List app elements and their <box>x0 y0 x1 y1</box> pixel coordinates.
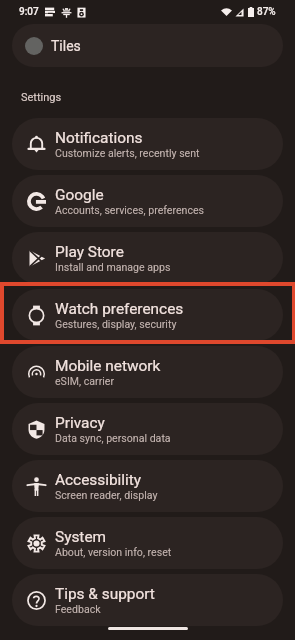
staticText: Mobile network <box>55 357 161 375</box>
staticText: Google <box>55 186 104 204</box>
button[interactable]: Notifications <box>12 118 283 170</box>
staticText: 9:07 <box>19 6 39 18</box>
button[interactable]: Mobile network <box>12 346 283 398</box>
staticText: Data sync, personal data <box>55 432 171 444</box>
button[interactable]: Tips & support <box>12 574 283 626</box>
button[interactable]: Privacy <box>12 403 283 455</box>
staticText: Settings <box>21 91 62 104</box>
button[interactable]: Google <box>12 175 283 227</box>
staticText: Notifications <box>55 129 143 147</box>
staticText: Accounts, services, preferences <box>55 204 205 216</box>
staticText: Watch preferences <box>55 300 184 318</box>
staticText: About, version info, reset <box>55 546 172 558</box>
staticText: Screen reader, display <box>55 489 158 501</box>
button[interactable]: Tiles <box>12 24 283 67</box>
staticText: System <box>55 528 107 546</box>
staticText: Gestures, display, security <box>55 318 177 330</box>
button[interactable]: System <box>12 517 283 569</box>
staticText: Tips & support <box>55 585 155 603</box>
staticText: Customize alerts, recently sent <box>55 147 200 159</box>
staticText: Tiles <box>51 38 81 54</box>
staticText: Install and manage apps <box>55 261 171 273</box>
staticText: eSIM, carrier <box>55 375 115 387</box>
staticText: Feedback <box>55 603 101 615</box>
button[interactable]: Accessibility <box>12 460 283 512</box>
staticText: Play Store <box>55 243 124 261</box>
staticText: Privacy <box>55 414 105 432</box>
staticText: Accessibility <box>55 471 142 489</box>
staticText: 87% <box>257 6 276 18</box>
button[interactable]: Watch preferences <box>12 289 283 341</box>
button[interactable]: Play Store <box>12 232 283 284</box>
